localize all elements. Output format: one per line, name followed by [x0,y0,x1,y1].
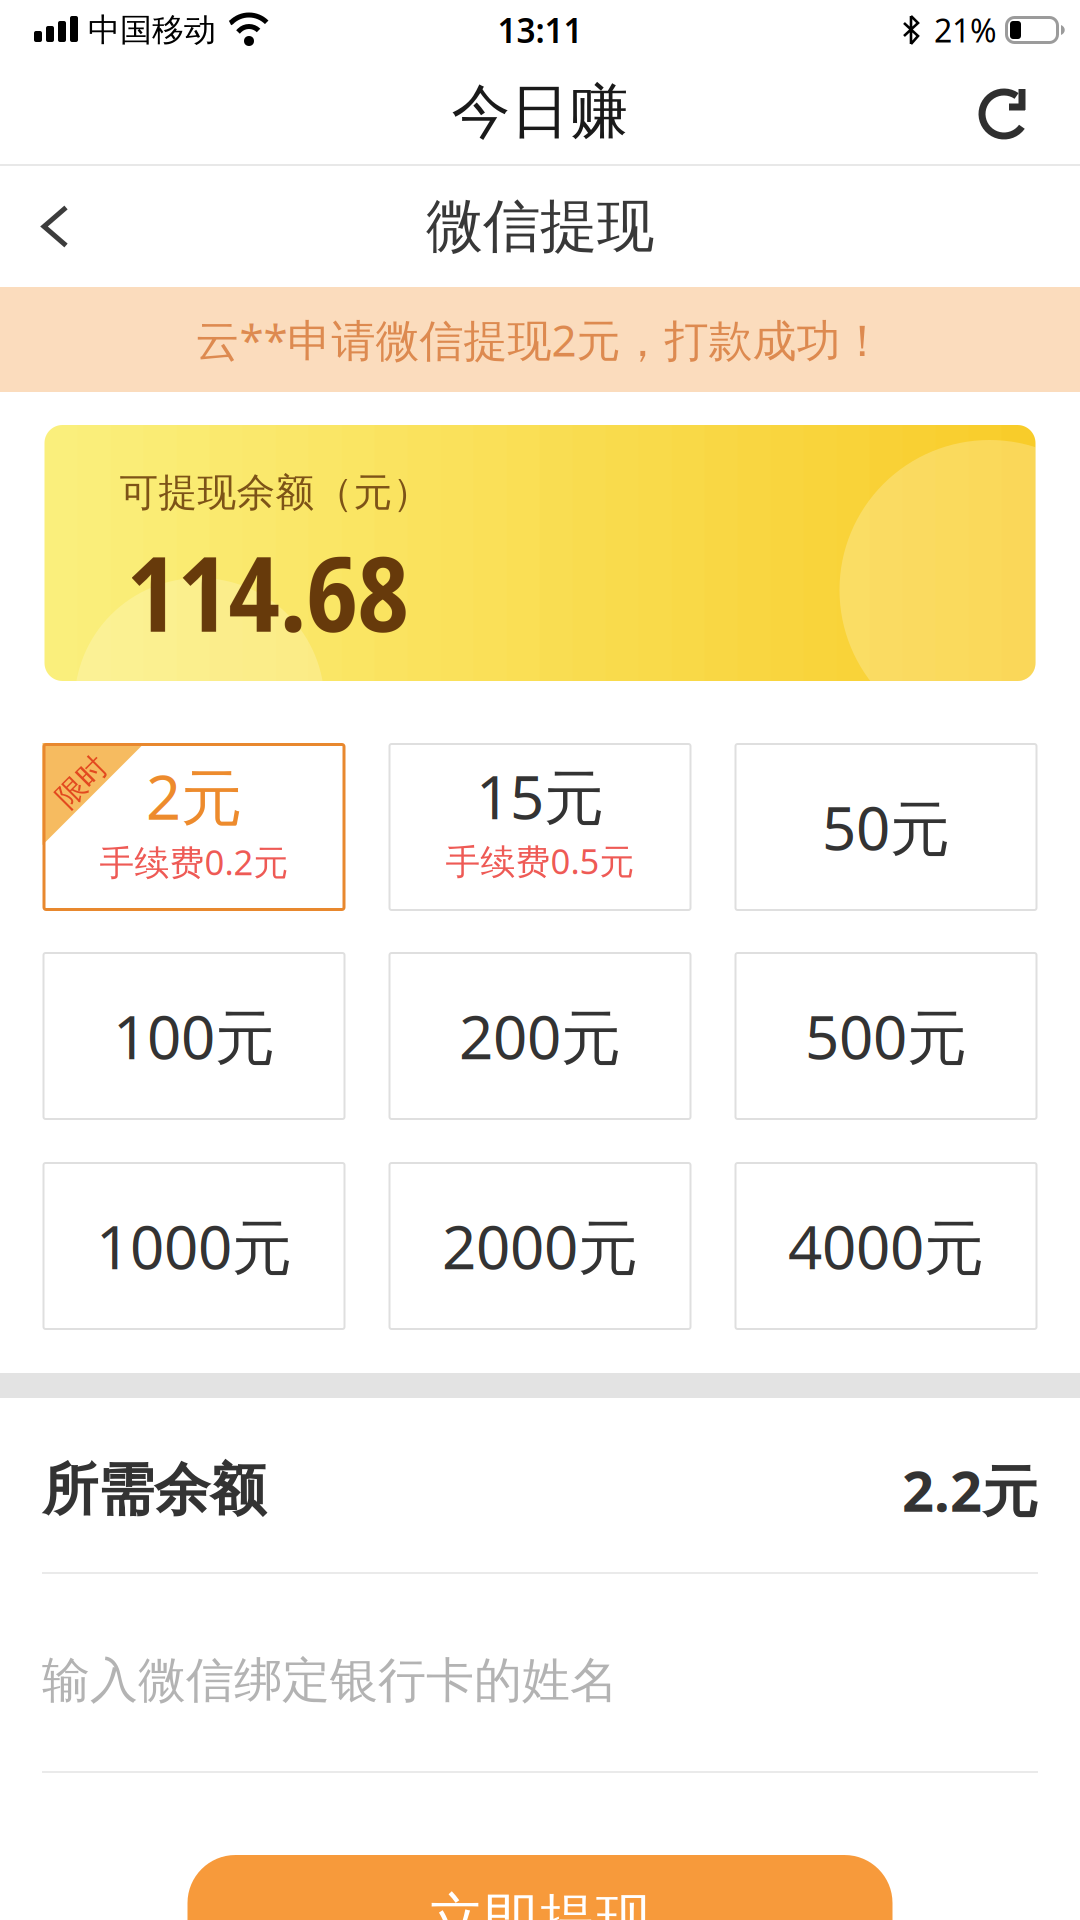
staticText: 手续费0.5元 [445,838,634,884]
button[interactable]: 2元 [42,743,345,911]
staticText: 114.68 [126,520,408,662]
staticText: 13:11 [497,8,582,52]
button[interactable]: 1000元 [42,1162,345,1330]
button[interactable]: 50元 [734,743,1037,911]
button[interactable]: 2000元 [388,1162,691,1330]
button[interactable]: 返回 [0,175,68,277]
button[interactable]: 15元 [388,743,691,911]
staticText: 限时 [52,764,110,800]
button[interactable]: 100元 [42,952,345,1120]
staticText: 1000元 [96,1206,292,1286]
staticText: 可提现余额（元） [119,469,431,516]
staticText: 50元 [822,787,950,867]
staticText: 今日赚 [451,76,628,148]
staticText: 微信提现 [426,191,654,262]
staticText: 500元 [805,996,967,1076]
staticText: 输入微信绑定银行卡的姓名 [42,1651,618,1710]
staticText: 2.2元 [902,1453,1038,1527]
staticText: 21% [934,9,997,51]
staticText: 15元 [476,756,604,836]
button[interactable]: 立即提现 [187,1855,892,1920]
staticText: 200元 [459,996,621,1076]
staticText: 立即提现 [428,1886,652,1920]
button[interactable]: 刷新 [968,76,1040,148]
staticText: 所需余额 [42,1456,266,1524]
staticText: 100元 [113,996,275,1076]
button[interactable]: 500元 [734,952,1037,1120]
staticText: 4000元 [788,1206,984,1286]
staticText: 中国移动 [88,10,216,50]
button[interactable]: 200元 [388,952,691,1120]
button[interactable]: 4000元 [734,1162,1037,1330]
staticText: 2000元 [442,1206,638,1286]
staticText: 云**申请微信提现2元，打款成功！ [195,310,884,369]
staticText: 手续费0.2元 [99,839,288,885]
staticText: 2元 [146,755,242,837]
